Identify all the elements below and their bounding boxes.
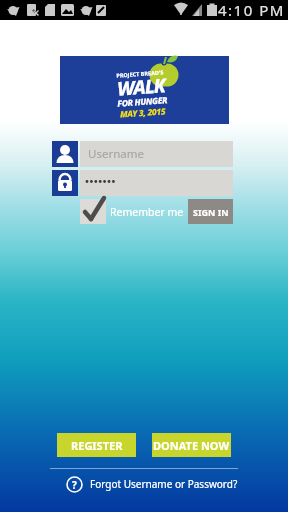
button[interactable]: Username	[80, 141, 233, 167]
staticText: Username	[88, 146, 144, 162]
staticText: MAY 3, 2015	[120, 105, 166, 120]
staticText: ?	[72, 478, 77, 492]
staticText: FOR HUNGER	[117, 94, 168, 110]
button[interactable]: DONATE NOW	[152, 433, 231, 457]
button[interactable]: REGISTER	[57, 433, 136, 457]
button[interactable]	[80, 170, 233, 196]
button[interactable]: SIGN IN	[188, 199, 233, 224]
staticText: REGISTER	[71, 438, 123, 453]
staticText: SIGN IN	[193, 206, 229, 218]
staticText: Remember me	[110, 205, 184, 219]
staticText: PROJECT BREAD'S	[116, 68, 164, 79]
staticText: WALK	[116, 72, 166, 102]
button[interactable]	[80, 199, 106, 224]
staticText: 4:10 PM	[218, 0, 285, 20]
staticText: DONATE NOW	[153, 438, 230, 453]
staticText: Forgot Username or Password?	[90, 477, 238, 491]
button[interactable]: ?	[56, 472, 256, 496]
